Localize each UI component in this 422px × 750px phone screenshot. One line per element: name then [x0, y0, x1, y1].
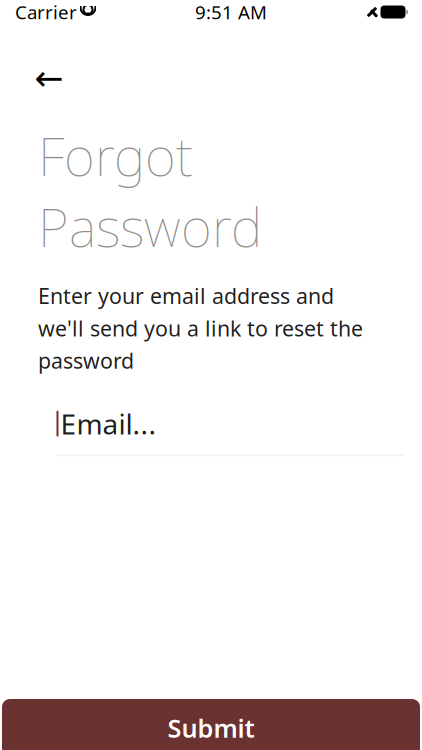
staticText [378, 5, 381, 19]
staticText: Submit [167, 711, 254, 745]
staticText: Forgot Password [38, 120, 262, 262]
staticText: Enter your email address and we'll send … [38, 282, 363, 375]
staticText: ← [34, 58, 63, 98]
staticText: Email... [60, 405, 156, 442]
staticText: Carrier [15, 0, 77, 24]
button[interactable]: Back [27, 58, 71, 98]
button[interactable]: Submit [2, 699, 420, 750]
staticText: 9:51 AM [195, 0, 267, 24]
